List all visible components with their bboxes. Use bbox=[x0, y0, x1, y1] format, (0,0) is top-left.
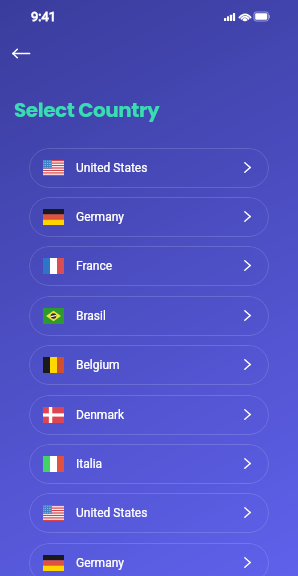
button[interactable]: Brasil bbox=[29, 296, 269, 336]
staticText: 9:41 bbox=[31, 9, 57, 24]
staticText: Denmark bbox=[76, 408, 125, 422]
staticText: Germany bbox=[76, 210, 124, 224]
staticText: Select Country bbox=[14, 96, 160, 124]
button[interactable]: Back bbox=[7, 39, 35, 67]
button[interactable]: United States bbox=[29, 493, 269, 533]
staticText: United States bbox=[76, 506, 148, 520]
staticText: Germany bbox=[76, 556, 124, 570]
button[interactable]: Germany bbox=[29, 543, 269, 576]
button[interactable]: Italia bbox=[29, 444, 269, 484]
button[interactable]: Belgium bbox=[29, 345, 269, 385]
button[interactable]: United States bbox=[29, 148, 269, 188]
staticText: Italia bbox=[76, 457, 103, 471]
staticText: Belgium bbox=[76, 358, 120, 372]
button[interactable]: France bbox=[29, 246, 269, 286]
staticText: Brasil bbox=[76, 309, 106, 323]
button[interactable]: Denmark bbox=[29, 395, 269, 435]
staticText: France bbox=[76, 259, 113, 273]
staticText: United States bbox=[76, 161, 148, 175]
button[interactable]: Germany bbox=[29, 197, 269, 237]
